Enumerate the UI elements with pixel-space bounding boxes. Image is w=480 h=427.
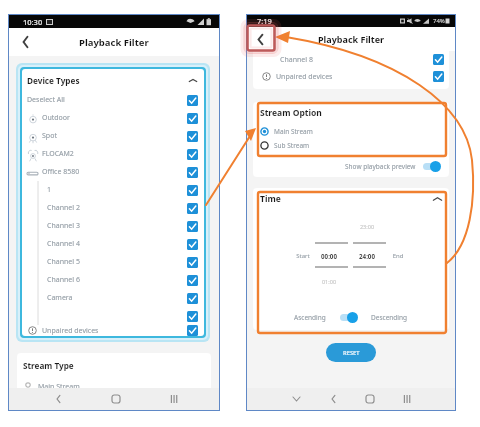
button[interactable]: Selected <box>187 113 198 124</box>
button[interactable]: Selected <box>187 131 198 142</box>
button[interactable]: Selected <box>187 185 198 196</box>
button[interactable]: Back <box>251 30 269 48</box>
staticText: Office 8580 <box>42 167 80 177</box>
staticText: Show playback preview <box>345 162 416 171</box>
staticText: 10:30 <box>23 17 43 27</box>
button[interactable]: Toggle on <box>339 312 358 323</box>
button[interactable]: Selected <box>187 221 198 232</box>
button[interactable]: Unpaired devices <box>22 325 204 336</box>
button[interactable]: RESET <box>326 343 376 362</box>
staticText: End <box>388 252 408 260</box>
staticText: Channel 4 <box>47 239 80 249</box>
button[interactable]: Selected <box>433 71 444 82</box>
button[interactable]: Home <box>105 388 127 410</box>
button[interactable]: Selected <box>187 239 198 250</box>
staticText: Main Stream <box>38 382 80 388</box>
staticText: Device Types <box>27 75 80 86</box>
button[interactable]: Back <box>15 32 35 52</box>
button[interactable]: Deselect All <box>22 91 204 109</box>
staticText: Channel 5 <box>47 257 80 267</box>
staticText: Playback Filter <box>79 36 149 49</box>
staticText: Channel 8 <box>280 55 313 65</box>
button[interactable]: Toggle on <box>422 161 441 172</box>
staticText: 74% <box>433 17 445 25</box>
button[interactable]: Selected <box>187 167 198 178</box>
staticText: Unpaired devices <box>276 72 333 82</box>
staticText: Playback Filter <box>318 33 385 45</box>
staticText: Channel 6 <box>47 275 80 285</box>
staticText: Descending <box>371 313 408 322</box>
button[interactable]: Show playback preview <box>253 156 441 177</box>
button[interactable]: Selected <box>22 307 204 325</box>
staticText: FLOCAM2 <box>42 149 74 159</box>
button[interactable]: Office 8580 <box>22 163 204 181</box>
button[interactable]: Selected <box>187 311 198 322</box>
button[interactable]: Channel 3 <box>22 217 204 235</box>
button[interactable]: Selected <box>187 293 198 304</box>
button[interactable]: 1 <box>22 181 204 199</box>
button[interactable]: Back <box>47 388 69 410</box>
staticText: 23:00 <box>351 223 383 230</box>
button[interactable]: Time <box>260 188 442 210</box>
staticText: 24:00 <box>351 252 383 260</box>
staticText: Stream Option <box>260 107 322 119</box>
staticText: Unpaired devices <box>42 326 99 336</box>
button[interactable]: Unpaired devices <box>261 68 444 85</box>
staticText: 1 <box>47 185 52 195</box>
button[interactable]: Channel 6 <box>22 271 204 289</box>
button[interactable]: Device Types <box>27 69 197 91</box>
button[interactable]: Main Stream <box>23 382 80 388</box>
button[interactable]: Channel 4 <box>22 235 204 253</box>
staticText: Deselect All <box>27 95 65 105</box>
staticText: Outdoor <box>42 113 70 123</box>
staticText: Time <box>260 193 281 205</box>
staticText: Start <box>293 252 313 260</box>
staticText: 00:00 <box>313 252 345 260</box>
button[interactable]: Selected <box>187 95 198 106</box>
button[interactable]: FLOCAM2 <box>22 145 204 163</box>
staticText: Stream Type <box>23 360 74 371</box>
button[interactable]: Channel 8 <box>261 51 444 68</box>
staticText: Channel 3 <box>47 221 80 231</box>
button[interactable]: Selected <box>187 325 198 336</box>
button[interactable]: Selected <box>187 257 198 268</box>
button[interactable]: Spot <box>22 127 204 145</box>
button[interactable]: Sub Stream <box>260 140 310 151</box>
button[interactable]: Selected <box>187 203 198 214</box>
button[interactable]: Back <box>322 388 344 410</box>
staticText: Camera <box>47 293 73 303</box>
staticText: Ascending <box>294 313 326 322</box>
button[interactable]: Selected <box>187 275 198 286</box>
button[interactable]: Selected <box>433 54 444 65</box>
button[interactable]: Outdoor <box>22 109 204 127</box>
staticText: Channel 2 <box>47 203 80 213</box>
staticText: 01:00 <box>313 278 345 285</box>
button[interactable]: Selected <box>187 149 198 160</box>
staticText: Spot <box>42 131 57 141</box>
staticText: Sub Stream <box>274 141 310 150</box>
staticText: RESET <box>343 349 360 357</box>
button[interactable]: Hide keyboard <box>285 388 307 410</box>
button[interactable]: Channel 5 <box>22 253 204 271</box>
button[interactable]: Channel 2 <box>22 199 204 217</box>
staticText: 7:19 <box>257 16 272 26</box>
button[interactable]: Camera <box>22 289 204 307</box>
button[interactable]: Recent apps <box>396 388 418 410</box>
button[interactable]: Recent apps <box>163 388 185 410</box>
button[interactable]: Main Stream <box>260 126 313 137</box>
staticText: Main Stream <box>274 127 313 136</box>
button[interactable]: Home <box>359 388 381 410</box>
